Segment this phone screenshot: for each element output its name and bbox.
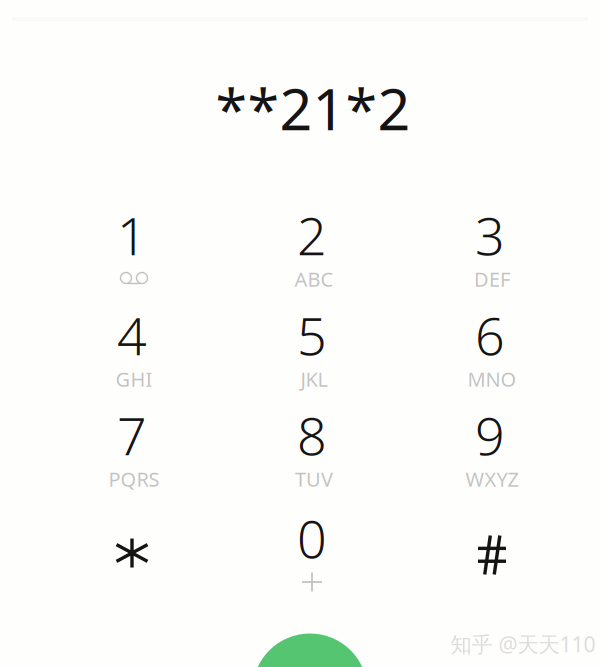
staticText: 4: [117, 300, 147, 370]
staticText: 9: [475, 400, 505, 470]
button[interactable]: 0: [237, 512, 387, 608]
button[interactable]: 2: [237, 209, 387, 305]
button[interactable]: **21*2: [13, 73, 600, 143]
staticText: MNO: [467, 366, 516, 392]
staticText: 2: [297, 200, 327, 270]
staticText: WXYZ: [465, 466, 518, 492]
staticText: ABC: [294, 266, 333, 292]
staticText: 7: [117, 400, 147, 470]
button[interactable]: *: [57, 512, 207, 608]
staticText: 0: [297, 503, 327, 573]
button[interactable]: #: [415, 512, 565, 608]
staticText: 知乎 @天天110: [450, 630, 595, 658]
staticText: 5: [297, 300, 327, 370]
staticText: 6: [475, 300, 505, 370]
button[interactable]: 6: [415, 309, 565, 405]
staticText: 3: [475, 200, 505, 270]
button[interactable]: 8: [237, 409, 387, 505]
staticText: **21*2: [215, 70, 410, 146]
staticText: GHI: [115, 366, 152, 392]
button[interactable]: 7: [57, 409, 207, 505]
button[interactable]: 4: [57, 309, 207, 405]
button[interactable]: Call: [252, 633, 367, 667]
button[interactable]: 5: [237, 309, 387, 405]
button[interactable]: 9: [415, 409, 565, 505]
button[interactable]: 3: [415, 209, 565, 305]
staticText: 8: [297, 400, 327, 470]
staticText: JKL: [300, 366, 327, 392]
button[interactable]: 1: [57, 209, 207, 305]
staticText: DEF: [474, 266, 510, 292]
staticText: PQRS: [108, 466, 159, 492]
staticText: TUV: [295, 466, 333, 492]
staticText: 1: [117, 200, 147, 270]
